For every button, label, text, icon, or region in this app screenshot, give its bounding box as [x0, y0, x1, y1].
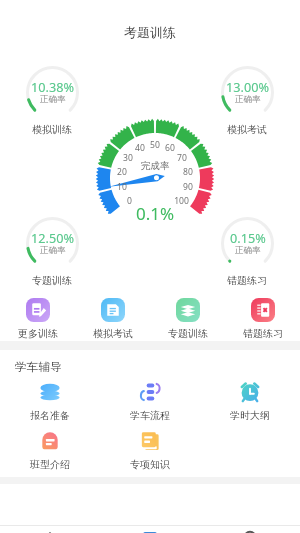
staticText: 专题训练	[32, 274, 72, 287]
staticText: 错题练习	[227, 274, 267, 287]
staticText: 模拟考试	[227, 123, 267, 136]
button[interactable]: 更多训练	[0, 298, 75, 340]
button[interactable]: 12.50%	[14, 217, 90, 287]
staticText: 0.1%	[136, 202, 175, 225]
staticText: 正确率	[235, 245, 261, 256]
staticText: 0.15%	[230, 229, 266, 246]
button[interactable]: 模拟考试	[75, 298, 150, 340]
staticText: 更多训练	[18, 327, 58, 340]
staticText: 60	[165, 142, 175, 154]
staticText: 模拟训练	[32, 123, 72, 136]
button[interactable]: 学车流程	[100, 380, 200, 422]
staticText: 专题训练	[168, 327, 208, 340]
button[interactable]: 首页	[0, 526, 100, 533]
staticText: 考题训练	[124, 24, 176, 40]
staticText: 错题练习	[243, 327, 283, 340]
button[interactable]: 报名准备	[0, 380, 100, 422]
button[interactable]: 学车	[100, 526, 200, 533]
staticText: 40	[135, 142, 145, 154]
staticText: 100	[174, 195, 189, 207]
button[interactable]: 专项知识	[100, 429, 200, 471]
staticText: 50	[150, 139, 160, 151]
staticText: 30	[123, 152, 133, 164]
button[interactable]: 学时大纲	[200, 380, 300, 422]
staticText: 12.50%	[31, 229, 74, 246]
staticText: 10.38%	[31, 78, 74, 95]
button[interactable]: 班型介绍	[0, 429, 100, 471]
button[interactable]: 我的	[200, 526, 300, 533]
button[interactable]: 错题练习	[225, 298, 300, 340]
staticText: 10	[117, 181, 127, 193]
staticText: 80	[183, 166, 193, 178]
staticText: 13.00%	[226, 78, 269, 95]
staticText: 正确率	[40, 245, 66, 256]
staticText: 20	[117, 166, 127, 178]
button[interactable]: 10.38%	[14, 66, 90, 136]
staticText: 90	[183, 181, 193, 193]
staticText: 报名准备	[30, 409, 70, 422]
staticText: 学车辅导	[15, 360, 62, 375]
staticText: 班型介绍	[30, 458, 70, 471]
staticText: 正确率	[235, 94, 261, 105]
staticText: 学时大纲	[230, 409, 270, 422]
staticText: 学车流程	[130, 409, 170, 422]
staticText: 0	[127, 195, 132, 207]
button[interactable]: 13.00%	[209, 66, 285, 136]
staticText: 完成率	[141, 160, 170, 172]
button[interactable]: 0.15%	[209, 217, 285, 287]
staticText: 模拟考试	[93, 327, 133, 340]
button[interactable]: 专题训练	[150, 298, 225, 340]
staticText: 专项知识	[130, 458, 170, 471]
staticText: 70	[177, 152, 187, 164]
staticText: 正确率	[40, 94, 66, 105]
